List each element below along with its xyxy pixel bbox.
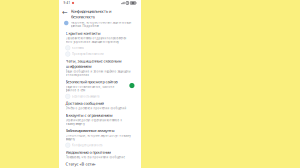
staticText: Показывать, что вы прочитали сообщение	[65, 155, 124, 159]
button[interactable]: Доставка сообщений	[59, 99, 141, 111]
button[interactable]: Скрытые контакты	[59, 29, 141, 45]
staticText: Доставка сообщений	[65, 101, 103, 106]
button[interactable]: Безопасный просмотр сайтов	[59, 78, 141, 93]
staticText: Чаты, защищённые сквозным шифрованием	[65, 58, 121, 69]
staticText: Защита от опасных сайтов, ссылок и файло…	[65, 85, 114, 92]
staticText: Проверка безопасности	[72, 52, 104, 56]
staticText: Уведомления о прочтении	[65, 149, 110, 155]
button[interactable]: Уведомления о прочтении	[59, 148, 141, 160]
staticText: Безопасный просмотр сайтов	[65, 79, 117, 84]
staticText: Настройки, которые помогают защитить ваш…	[70, 21, 131, 28]
staticText: Скрывайте контакты от других пользовател…	[65, 36, 126, 44]
button[interactable]: Проверка безопасности	[59, 51, 141, 57]
staticText: Отчёты о доставке и прочтении сообщений	[65, 107, 126, 110]
button[interactable]: Назад	[62, 9, 67, 16]
staticText: Заблокированные аккаунты	[65, 128, 114, 133]
staticText: Безопасность аккаунта	[72, 95, 99, 98]
button[interactable]: Статус «В сети»	[59, 160, 141, 168]
staticText: Контакты	[72, 46, 84, 50]
button[interactable]: Чаты, защищённые сквозным шифрованием	[59, 57, 141, 78]
button[interactable]: Заблокированные аккаунты	[59, 127, 141, 142]
staticText: Статус «В сети»	[65, 161, 95, 167]
button[interactable]: Аккаунты с ограничением	[59, 111, 141, 127]
staticText: Скрытые контакты	[65, 31, 100, 36]
staticText: Ваши сообщения и звонки надёжно защищены…	[65, 70, 130, 77]
staticText: Конфиденциальность и безопасность	[71, 9, 111, 19]
button[interactable]: Конфиденциальность	[59, 142, 141, 148]
staticText: Список людей, которым закрыт доступ к ва…	[65, 134, 130, 141]
staticText: 9:41	[63, 1, 70, 5]
staticText: ←	[62, 8, 68, 16]
button[interactable]: Безопасность аккаунта	[59, 93, 141, 99]
button[interactable]: Контакты	[59, 45, 141, 51]
staticText: Ограничьте доступ отдельных контактов к …	[65, 118, 121, 125]
staticText: Конфиденциальность	[72, 143, 102, 147]
staticText: Аккаунты с ограничением	[65, 112, 112, 118]
button[interactable]: Настройки, которые помогают защитить ваш…	[59, 21, 141, 29]
